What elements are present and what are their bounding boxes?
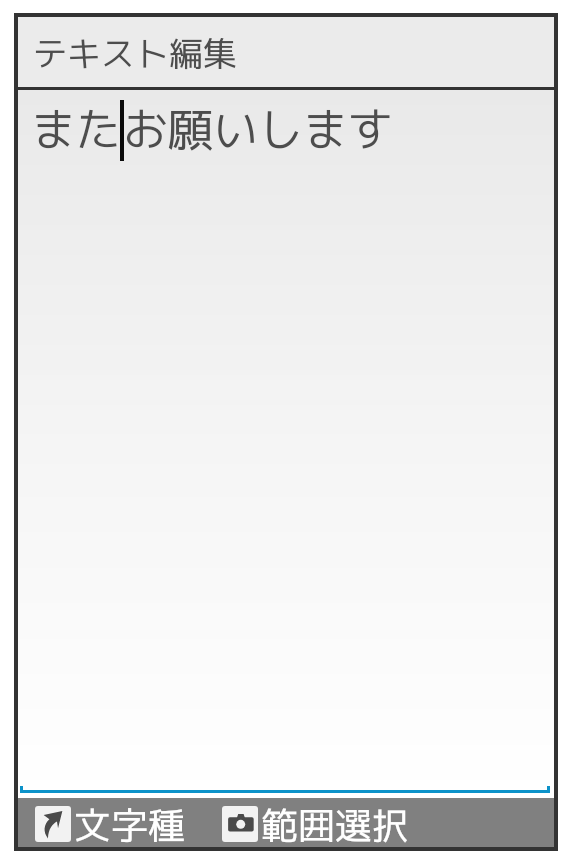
button[interactable]: テキスト編集 xyxy=(18,17,554,87)
staticText: お願いします xyxy=(123,98,394,161)
staticText: また xyxy=(31,98,122,161)
button[interactable]: 範囲選択 Select range xyxy=(222,806,409,855)
button[interactable]: また xyxy=(18,90,554,798)
staticText: テキスト編集 xyxy=(33,29,237,76)
staticText: 範囲選択 xyxy=(261,799,409,848)
button[interactable]: 文字種 Change character type xyxy=(35,806,185,855)
staticText: 文字種 xyxy=(74,799,185,848)
